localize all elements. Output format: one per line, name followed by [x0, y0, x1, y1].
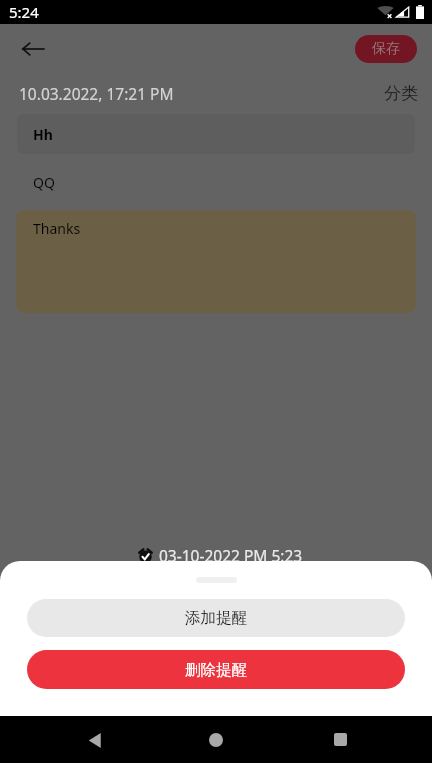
button[interactable]: Recents [334, 733, 347, 746]
staticText: 03-10-2022 PM 5:23 [159, 545, 303, 566]
staticText: Hh [33, 125, 53, 144]
button[interactable]: Thanks [16, 210, 416, 313]
staticText: 添加提醒 [185, 608, 247, 628]
staticText: 5:24 [9, 2, 39, 22]
staticText: Thanks [33, 219, 81, 238]
button[interactable]: QQ [33, 154, 399, 210]
staticText: 分类 [384, 83, 418, 104]
button[interactable]: Back [83, 728, 107, 752]
button[interactable]: 分类 [380, 79, 422, 108]
button[interactable]: 删除提醒 [27, 650, 405, 689]
button[interactable]: Back [15, 31, 51, 67]
button[interactable]: 保存 [355, 35, 417, 63]
staticText: QQ [33, 173, 55, 192]
button[interactable]: Home [209, 733, 223, 747]
button[interactable]: Reminder time [138, 545, 303, 566]
button[interactable]: Hh [17, 114, 415, 154]
staticText: 保存 [372, 40, 400, 58]
button[interactable]: 添加提醒 [27, 599, 405, 637]
staticText: 10.03.2022, 17:21 PM [19, 83, 174, 104]
staticText: 删除提醒 [185, 660, 247, 680]
